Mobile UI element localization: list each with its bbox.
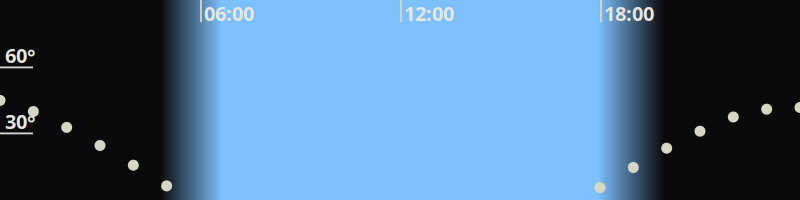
staticText: 18:00 <box>604 0 654 27</box>
button[interactable]: 24-hour temperature forecast chart <box>0 0 800 200</box>
staticText: 30° <box>5 108 35 136</box>
staticText: 06:00 <box>204 0 254 27</box>
staticText: 60° <box>5 42 35 70</box>
staticText: 12:00 <box>404 0 454 27</box>
